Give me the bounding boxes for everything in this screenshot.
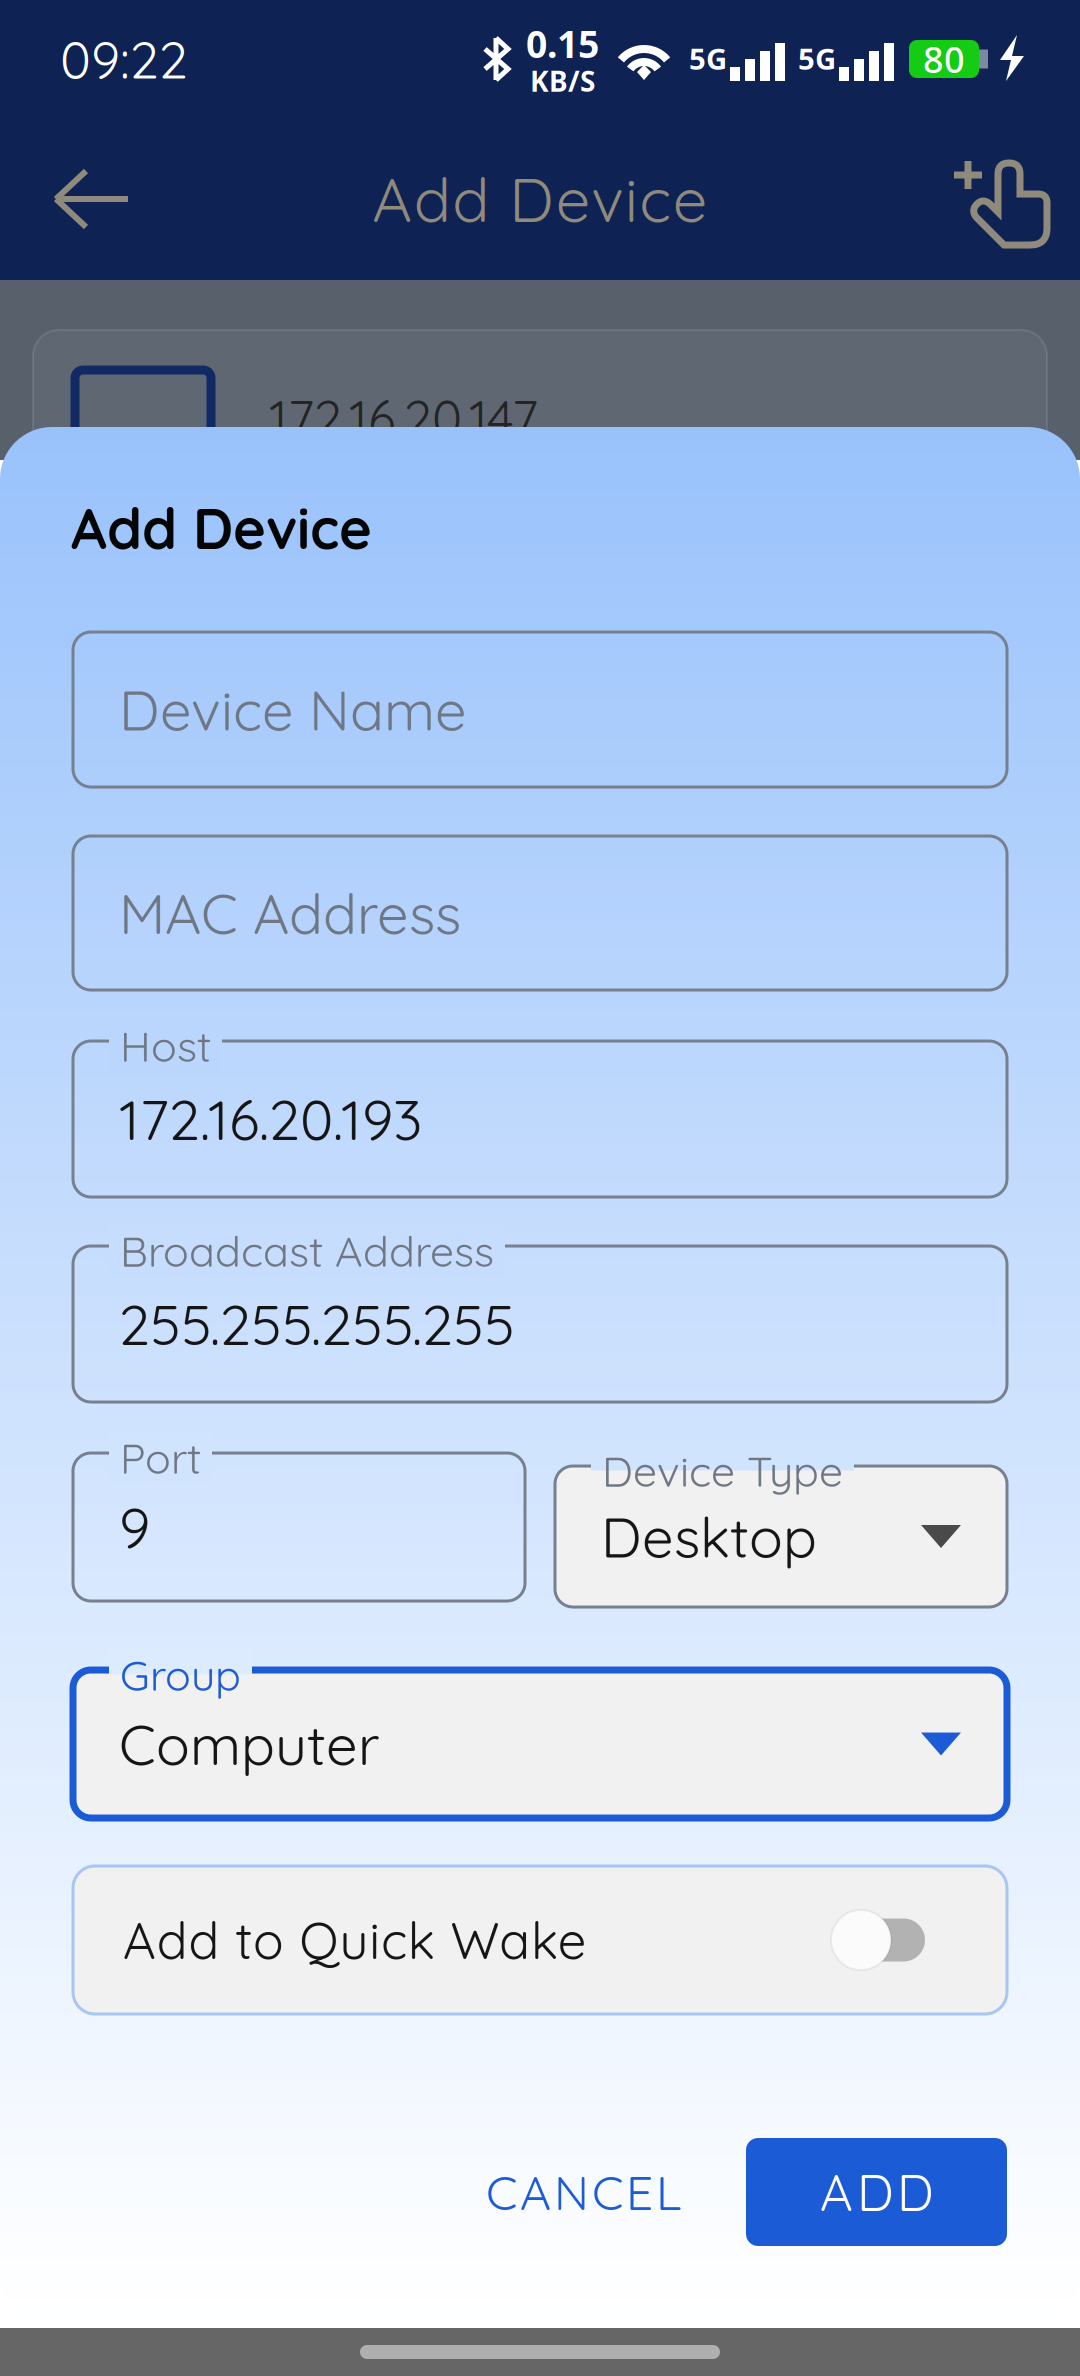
button[interactable]: Add to Quick Wake	[831, 1910, 925, 1970]
staticText: 9	[119, 1492, 150, 1562]
staticText: Group	[120, 1648, 241, 1701]
staticText: Add Device	[71, 493, 372, 563]
staticText: 172.16.20.147	[269, 386, 538, 450]
staticText: Computer	[119, 1709, 380, 1779]
staticText: 172.16.20.193	[119, 1084, 422, 1154]
staticText: 255.255.255.255	[119, 1289, 515, 1359]
staticText: 0.15	[526, 19, 599, 68]
staticText: Port	[120, 1431, 201, 1484]
staticText: Device Type	[602, 1444, 843, 1497]
button[interactable]: Back	[32, 146, 152, 252]
staticText: Add to Quick Wake	[123, 1908, 587, 1972]
button[interactable]: ADD	[746, 2138, 1007, 2246]
staticText: MAC Address	[119, 878, 461, 948]
staticText: ADD	[820, 2160, 933, 2224]
staticText: KB/S	[530, 62, 595, 99]
button[interactable]: Add device	[938, 140, 1054, 258]
staticText: 5G	[689, 39, 727, 78]
staticText: Host	[120, 1019, 211, 1072]
staticText: 5G	[798, 39, 836, 78]
staticText: CANCEL	[486, 2162, 682, 2222]
staticText: Device Name	[119, 674, 467, 744]
button[interactable]: Computer	[73, 1670, 1007, 1818]
staticText: Broadcast Address	[120, 1224, 494, 1277]
staticText: Add Device	[372, 161, 708, 237]
staticText: Desktop	[601, 1501, 817, 1571]
button[interactable]: CANCEL	[434, 2138, 734, 2246]
staticText: 09:22	[60, 26, 188, 91]
staticText: 80	[923, 35, 965, 83]
